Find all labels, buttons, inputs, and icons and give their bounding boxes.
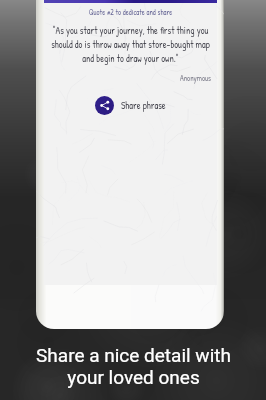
staticText: Anonymous — [44, 73, 211, 83]
staticText: "As you start your journey, the first th… — [44, 24, 217, 65]
button[interactable]: Quote #2 to dedicate and share — [44, 7, 217, 17]
button[interactable]: Share — [93, 93, 168, 118]
staticText: your loved ones — [67, 366, 200, 388]
staticText: Share phrase — [121, 99, 166, 112]
staticText: Share a nice detail with — [36, 344, 231, 366]
staticText: Quote #2 to dedicate and share — [44, 7, 217, 17]
other: Share — [95, 96, 114, 115]
